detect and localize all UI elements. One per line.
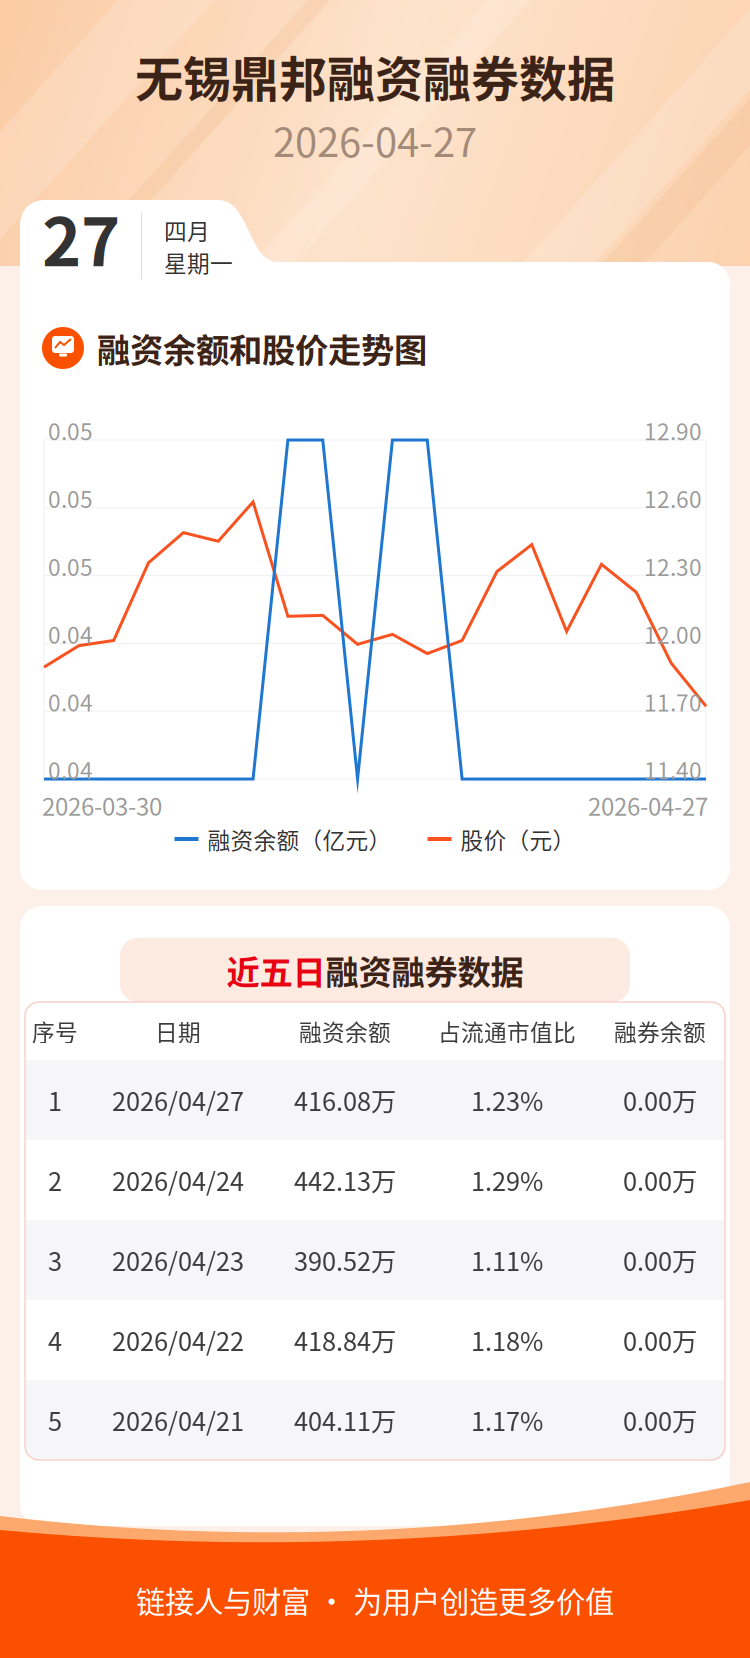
staticText: 0.00万 [623, 1242, 697, 1278]
staticText: 5 [48, 1402, 62, 1438]
staticText: 27 [42, 189, 120, 285]
staticText: 融资余额和股价走势图 [97, 324, 427, 372]
staticText: 股价（元） [460, 823, 575, 855]
staticText: 1.17% [471, 1402, 543, 1438]
staticText: 0.04 [48, 753, 93, 786]
staticText: 11.70 [644, 685, 702, 718]
staticText: 四月 [164, 214, 210, 246]
staticText: 12.60 [644, 482, 702, 515]
staticText: 融资余额 [299, 1015, 391, 1047]
staticText: 2026/04/22 [112, 1322, 244, 1358]
staticText: 12.30 [644, 550, 702, 582]
staticText: 2 [48, 1162, 62, 1198]
staticText: 1 [48, 1082, 62, 1118]
staticText: 0.00万 [623, 1162, 697, 1198]
staticText: 0.05 [48, 550, 93, 582]
staticText: 1.23% [471, 1082, 543, 1118]
staticText: 2026-04-27 [588, 788, 708, 823]
staticText: 融资融券数据 [325, 946, 523, 994]
staticText: 星期一 [164, 246, 233, 278]
staticText: 融资余额（亿元） [207, 823, 391, 855]
staticText: 3 [48, 1242, 62, 1278]
staticText: 2026/04/24 [112, 1162, 244, 1198]
staticText: 2026/04/27 [112, 1082, 244, 1118]
staticText: 11.40 [644, 753, 702, 786]
staticText: 418.84万 [294, 1322, 396, 1358]
staticText: 0.05 [48, 414, 93, 447]
staticText: 0.04 [48, 617, 93, 650]
staticText: 416.08万 [294, 1082, 396, 1118]
staticText: 0.05 [48, 482, 93, 515]
staticText: 日期 [155, 1015, 201, 1047]
staticText: 融券余额 [614, 1015, 706, 1047]
staticText: 12.00 [644, 617, 702, 650]
staticText: 12.90 [644, 414, 702, 447]
staticText: 4 [48, 1322, 62, 1358]
staticText: 1.29% [471, 1162, 543, 1198]
staticText: 2026-04-27 [273, 110, 477, 168]
staticText: 占流通市值比 [438, 1015, 576, 1047]
staticText: 442.13万 [294, 1162, 396, 1198]
staticText: 390.52万 [294, 1242, 396, 1278]
staticText: 404.11万 [294, 1402, 396, 1438]
staticText: 1.18% [471, 1322, 543, 1358]
staticText: 1.11% [471, 1242, 543, 1278]
staticText: 0.00万 [623, 1322, 697, 1358]
staticText: 2026/04/21 [112, 1402, 244, 1438]
staticText: 0.00万 [623, 1082, 697, 1118]
staticText: 0.04 [48, 685, 93, 718]
staticText: 序号 [32, 1015, 78, 1047]
staticText: 2026/04/23 [112, 1242, 244, 1278]
staticText: 近五日 [226, 946, 325, 994]
staticText: 链接人与财富 · 为用户创造更多价值 [136, 1579, 614, 1621]
staticText: 2026-03-30 [42, 788, 162, 823]
staticText: 无锡鼎邦融资融券数据 [135, 41, 615, 110]
staticText: 0.00万 [623, 1402, 697, 1438]
